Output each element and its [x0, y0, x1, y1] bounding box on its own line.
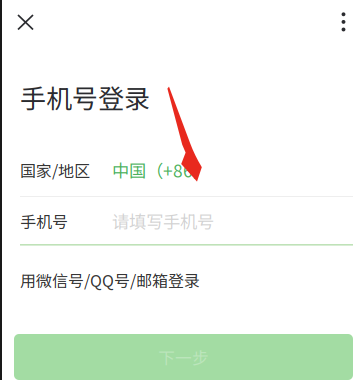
- staticText: 请填写手机号: [112, 208, 214, 234]
- button[interactable]: 手机号: [0, 197, 353, 245]
- button[interactable]: Close: [8, 0, 60, 44]
- button[interactable]: 下一步: [14, 334, 353, 380]
- staticText: 中国（+86）: [112, 157, 210, 183]
- staticText: 用微信号/QQ号/邮箱登录: [20, 268, 200, 292]
- button[interactable]: 用微信号/QQ号/邮箱登录: [0, 263, 220, 297]
- button[interactable]: 国家/地区: [0, 153, 353, 187]
- staticText: 手机号登录: [20, 78, 150, 116]
- staticText: 国家/地区: [20, 158, 90, 182]
- button[interactable]: More options: [321, 0, 361, 44]
- staticText: 手机号: [20, 209, 68, 233]
- staticText: 下一步: [158, 345, 209, 369]
